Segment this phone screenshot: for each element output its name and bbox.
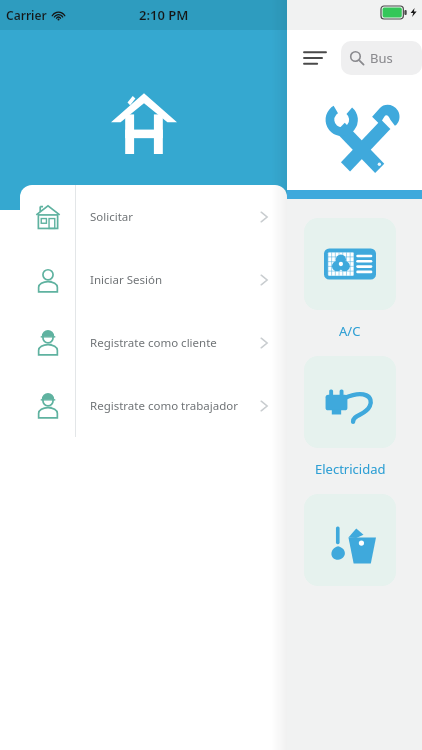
button[interactable]: Category bbox=[304, 494, 396, 586]
button[interactable]: Iniciar Sesión bbox=[20, 248, 287, 311]
button[interactable]: Solicitar bbox=[20, 185, 287, 248]
button[interactable]: A/C bbox=[304, 218, 396, 310]
staticText: Carrier bbox=[6, 7, 47, 23]
staticText: Registrate como trabajador bbox=[90, 398, 238, 414]
staticText: A/C bbox=[339, 322, 361, 340]
staticText: Electricidad bbox=[315, 460, 386, 478]
button[interactable]: Registrate como cliente bbox=[20, 311, 287, 374]
button[interactable]: Registrate como trabajador bbox=[20, 374, 287, 437]
staticText: Registrate como cliente bbox=[90, 335, 217, 351]
staticText: Bus bbox=[370, 49, 393, 67]
staticText: Solicitar bbox=[90, 209, 134, 225]
button[interactable]: Bus bbox=[341, 41, 422, 75]
staticText: Iniciar Sesión bbox=[90, 272, 162, 288]
staticText: 2:10 PM bbox=[139, 6, 189, 24]
button[interactable]: Electricidad bbox=[304, 356, 396, 448]
button[interactable]: Menu bbox=[301, 44, 329, 72]
